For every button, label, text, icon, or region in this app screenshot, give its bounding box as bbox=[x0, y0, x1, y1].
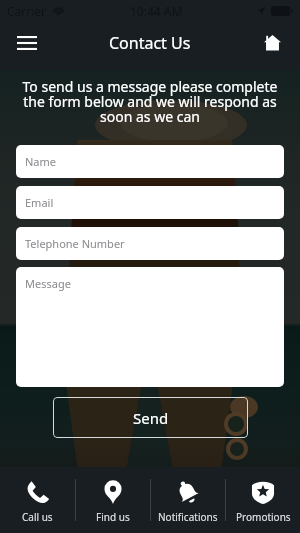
staticText: Carrier bbox=[7, 3, 47, 19]
staticText: Contact Us bbox=[109, 32, 191, 54]
button[interactable]: Send bbox=[53, 397, 248, 438]
staticText: To send us a message please complete the… bbox=[18, 77, 282, 126]
button[interactable]: Home bbox=[255, 26, 289, 60]
button[interactable]: Name bbox=[16, 145, 284, 178]
button[interactable]: Telephone Number bbox=[16, 227, 284, 260]
staticText: Call us bbox=[22, 510, 53, 524]
staticText: Telephone Number bbox=[25, 236, 125, 251]
button[interactable]: Notifications bbox=[151, 467, 225, 533]
button[interactable]: Message bbox=[16, 267, 284, 387]
staticText: Promotions bbox=[236, 510, 291, 524]
staticText: Send bbox=[133, 408, 169, 428]
staticText: 10:44 AM bbox=[130, 3, 183, 19]
button[interactable]: Email bbox=[16, 186, 284, 219]
staticText: Email bbox=[25, 195, 54, 210]
staticText: Message bbox=[25, 276, 71, 291]
button[interactable]: Call us bbox=[0, 467, 75, 533]
staticText: Name bbox=[25, 154, 57, 169]
button[interactable]: Promotions bbox=[226, 467, 300, 533]
button[interactable]: Find us bbox=[76, 467, 150, 533]
button[interactable]: Menu bbox=[10, 26, 44, 60]
staticText: Find us bbox=[96, 510, 130, 524]
staticText: Notifications bbox=[158, 510, 218, 524]
